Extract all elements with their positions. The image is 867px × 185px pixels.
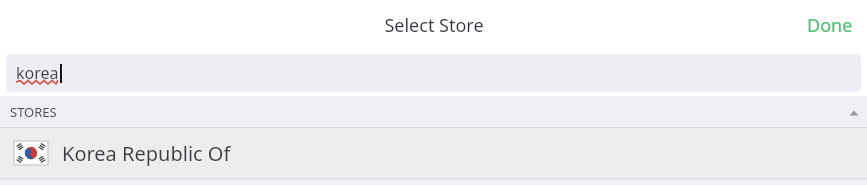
staticText: Select Store [384,13,484,38]
button[interactable]: korea [6,54,861,92]
button[interactable]: Korea Republic Of flag [0,128,867,178]
staticText: Done [807,13,853,38]
other: Korea Republic Of flag [14,141,48,165]
staticText: korea [16,62,59,84]
button[interactable]: Done [793,3,867,48]
staticText: STORES [10,103,57,121]
other: Scroll up [849,96,859,128]
staticText: Korea Republic Of [62,140,231,167]
